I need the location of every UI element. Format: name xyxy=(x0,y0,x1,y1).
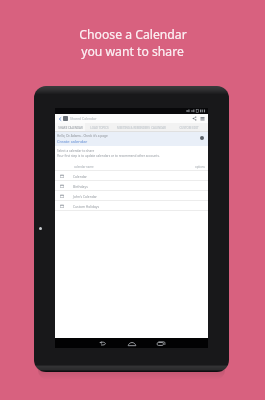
button[interactable]: John's Calendar xyxy=(55,191,208,200)
button[interactable]: More options xyxy=(199,115,206,122)
button[interactable]: Navigate up xyxy=(57,116,63,122)
button[interactable]: Calendar xyxy=(55,171,208,180)
button[interactable]: LOAD TOPICS xyxy=(85,123,113,132)
staticText: Hello, Dr. Adams - Check it's a page xyxy=(57,134,108,138)
button[interactable]: Share xyxy=(191,115,198,122)
staticText: MEETING & REMINDERS CALENDAR xyxy=(117,126,166,130)
staticText: Select a calendar to share xyxy=(57,149,95,153)
staticText: LOAD TOPICS xyxy=(90,126,109,130)
staticText: John's Calendar xyxy=(73,194,97,198)
button[interactable]: Recents xyxy=(156,338,166,348)
staticText: you want to share xyxy=(81,43,184,60)
staticText: CUSTOM EDIT xyxy=(179,126,199,130)
button[interactable]: Home xyxy=(127,338,137,348)
staticText: calendar name xyxy=(74,165,94,169)
staticText: Your first step is to update calendars o… xyxy=(57,154,160,158)
staticText: options xyxy=(195,165,205,169)
button[interactable]: Birthdays xyxy=(55,181,208,190)
staticText: Birthdays xyxy=(73,184,88,188)
staticText: Create calendar xyxy=(57,139,88,145)
button[interactable]: Back xyxy=(98,338,108,348)
staticText: Choose a Calendar xyxy=(79,26,187,43)
button[interactable]: Dismiss xyxy=(200,136,204,140)
button[interactable]: MEETING & REMINDERS CALENDAR xyxy=(113,123,170,132)
staticText: Calendar xyxy=(73,174,87,178)
button[interactable]: Custom Holidays xyxy=(55,201,208,210)
staticText: Shared Calendar xyxy=(70,116,97,121)
button[interactable]: CUSTOM EDIT xyxy=(170,123,208,132)
staticText: Custom Holidays xyxy=(73,204,100,208)
button[interactable]: SHARE CALENDAR xyxy=(55,123,85,132)
staticText: SHARE CALENDAR xyxy=(58,126,83,130)
